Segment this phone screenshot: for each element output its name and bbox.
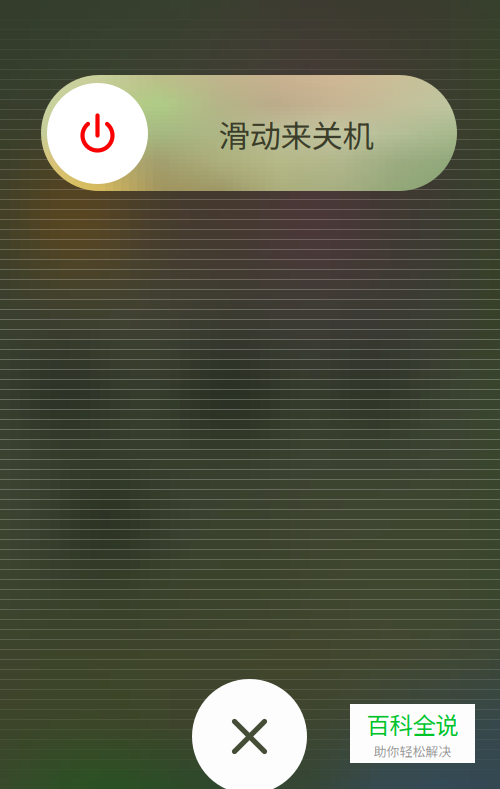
button[interactable]: 滑动来关机: [41, 75, 457, 191]
button[interactable]: Cancel: [192, 679, 307, 789]
staticText: 滑动来关机: [218, 111, 373, 157]
staticText: 助你轻松解决: [373, 742, 451, 760]
staticText: 百科全说: [366, 707, 458, 741]
